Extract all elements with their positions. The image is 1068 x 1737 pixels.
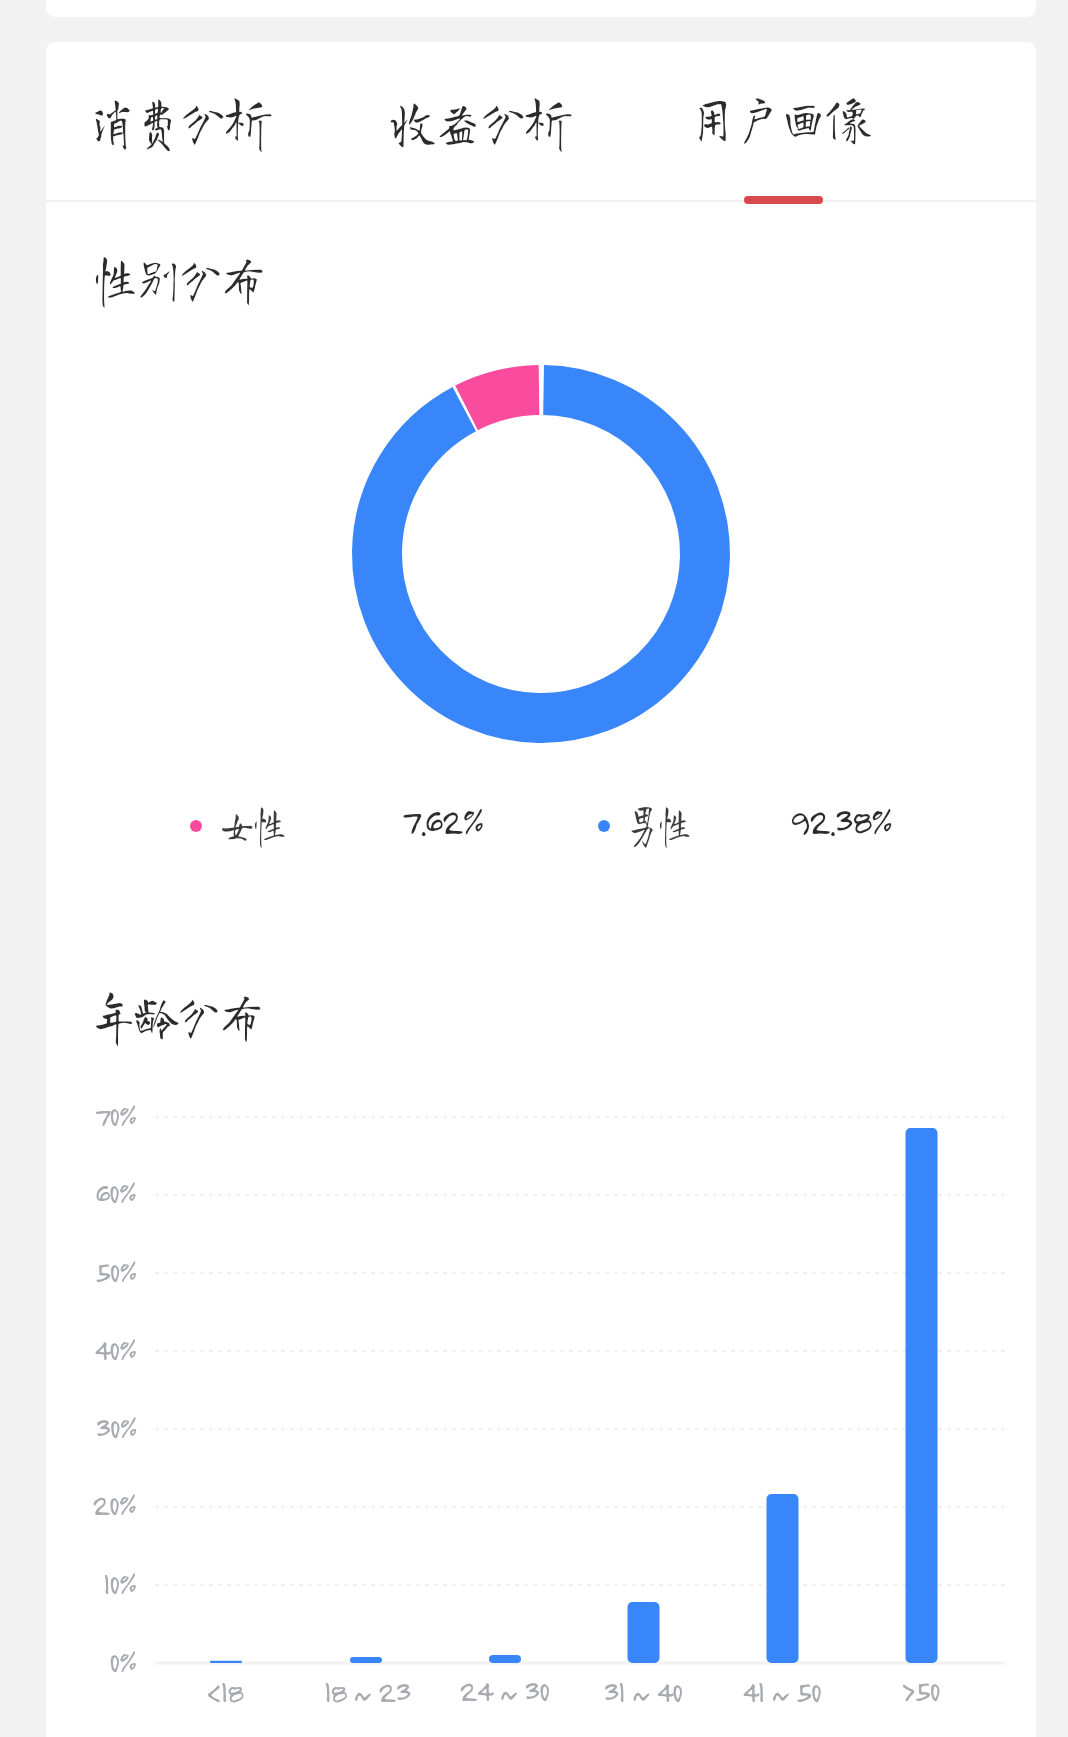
staticText: <18 [206,1672,243,1709]
staticText: 10% [103,1565,136,1601]
staticText: 年龄分布 [93,987,263,1043]
button[interactable]: 收益分析 [351,58,613,192]
staticText: 女性 [221,801,286,846]
button[interactable] [180,792,500,860]
staticText: >50 [899,1671,939,1708]
staticText: 40% [94,1331,136,1367]
staticText: 50% [95,1253,136,1289]
staticText: 31 ~ 40 [603,1672,682,1709]
staticText: 18 ~ 23 [324,1672,410,1709]
staticText: 30% [95,1409,137,1445]
staticText: 收益分析 [390,93,571,149]
staticText: 7.62% [401,798,483,842]
staticText: 60% [95,1174,136,1210]
staticText: 24 ~ 30 [459,1671,549,1708]
staticText: 70% [94,1097,136,1133]
staticText: 20% [92,1486,136,1522]
staticText: 92.38% [789,798,892,842]
staticText: 0% [109,1643,136,1679]
button[interactable] [588,792,908,860]
button[interactable]: 用户画像 [659,58,916,192]
staticText: 用户画像 [690,89,871,145]
staticText: 41 ~ 50 [742,1672,821,1709]
staticText: 男性 [626,801,691,846]
staticText: 消费分析 [90,93,271,149]
button[interactable]: 消费分析 [56,58,312,192]
staticText: 性别分布 [94,250,265,306]
